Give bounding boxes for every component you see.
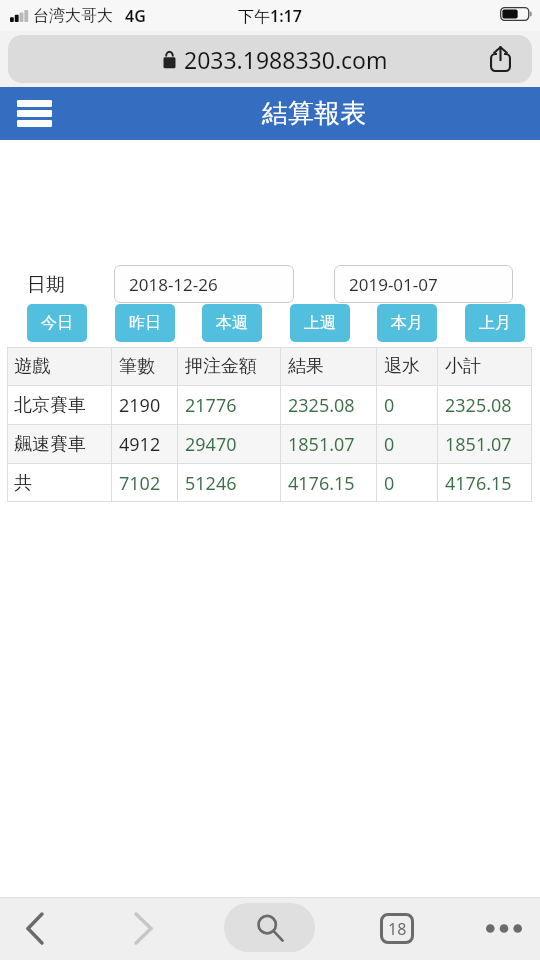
other: Share: [490, 46, 511, 72]
staticText: 押注金額: [185, 355, 257, 378]
button[interactable]: Tabs: [355, 897, 439, 960]
staticText: 4912: [119, 432, 161, 457]
staticText: 昨日: [129, 313, 161, 333]
staticText: 結算報表: [262, 97, 366, 130]
button[interactable]: Back: [0, 897, 89, 960]
staticText: 2033.1988330.com: [184, 44, 388, 75]
staticText: 北京賽車: [14, 394, 86, 417]
staticText: 上月: [479, 313, 511, 333]
staticText: 4176.15: [288, 471, 355, 496]
button[interactable]: 本月: [377, 304, 437, 342]
staticText: 51246: [185, 471, 237, 496]
button[interactable]: 2033.1988330.com: [8, 35, 532, 83]
staticText: 21776: [185, 393, 237, 418]
staticText: 共: [14, 472, 32, 495]
staticText: 1851.07: [288, 432, 355, 457]
button[interactable]: Search: [224, 903, 315, 952]
staticText: 0: [384, 471, 395, 496]
staticText: 2190: [119, 393, 161, 418]
staticText: 日期: [27, 273, 65, 297]
staticText: 0: [384, 432, 395, 457]
button[interactable]: 上週: [290, 304, 350, 342]
button[interactable]: 今日: [27, 304, 87, 342]
staticText: 台湾大哥大: [33, 6, 113, 26]
staticText: 18: [388, 918, 407, 940]
button[interactable]: 2018-12-26: [114, 265, 294, 303]
button[interactable]: Menu: [6, 87, 62, 140]
button[interactable]: More: [468, 897, 540, 960]
button[interactable]: 2019-01-07: [334, 265, 513, 303]
staticText: 4176.15: [445, 471, 512, 496]
staticText: 本週: [216, 313, 248, 333]
button[interactable]: 昨日: [115, 304, 175, 342]
button[interactable]: Forward: [101, 897, 185, 960]
staticText: 筆數: [119, 355, 155, 378]
button[interactable]: 本週: [202, 304, 262, 342]
staticText: 遊戲: [14, 355, 50, 378]
staticText: 小計: [445, 355, 481, 378]
staticText: 2019-01-07: [349, 273, 438, 296]
staticText: 飆速賽車: [14, 433, 86, 456]
staticText: 下午1:17: [238, 5, 302, 27]
staticText: 7102: [119, 471, 161, 496]
staticText: 上週: [304, 313, 336, 333]
staticText: 今日: [41, 313, 73, 333]
staticText: 2018-12-26: [129, 273, 218, 296]
staticText: 1851.07: [445, 432, 512, 457]
button[interactable]: 上月: [465, 304, 525, 342]
staticText: 2325.08: [288, 393, 355, 418]
staticText: 0: [384, 393, 395, 418]
staticText: 退水: [384, 355, 420, 378]
staticText: 本月: [391, 313, 423, 333]
staticText: 結果: [288, 355, 324, 378]
staticText: 29470: [185, 432, 237, 457]
staticText: 4G: [125, 5, 146, 27]
staticText: 2325.08: [445, 393, 512, 418]
